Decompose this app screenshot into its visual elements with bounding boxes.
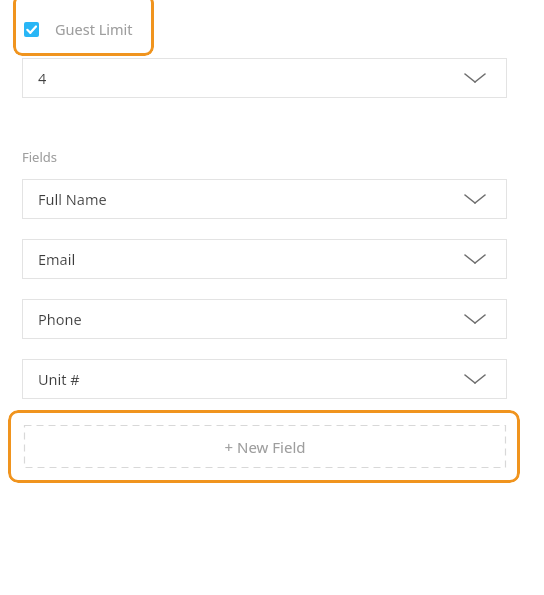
staticText: Email [38, 249, 76, 269]
button[interactable]: Full Name [22, 179, 507, 219]
staticText: Unit # [38, 369, 80, 389]
staticText: Full Name [38, 189, 107, 209]
button[interactable]: Guest Limit checkbox, checked [13, 0, 154, 56]
staticText: 4 [38, 68, 47, 88]
button[interactable]: 4 [22, 58, 507, 98]
other: Guest Limit checkbox, checked [24, 22, 39, 37]
staticText: Phone [38, 309, 82, 329]
button[interactable]: Unit # [22, 359, 507, 399]
staticText: Guest Limit [55, 19, 133, 39]
staticText: Fields [22, 148, 58, 166]
button[interactable]: + New Field [8, 410, 520, 483]
button[interactable]: Email [22, 239, 507, 279]
button[interactable]: Phone [22, 299, 507, 339]
staticText: + New Field [24, 437, 506, 457]
